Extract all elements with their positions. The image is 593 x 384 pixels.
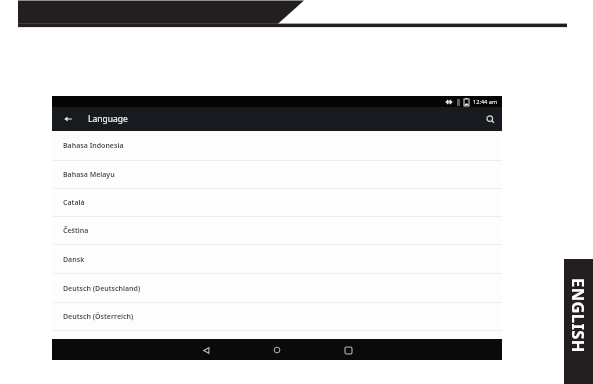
button[interactable]: Deutsch (Österreich)	[52, 303, 502, 331]
button[interactable]: Dansk	[52, 245, 502, 274]
button[interactable]: Čeština	[52, 217, 502, 245]
staticText: Deutsch (Österreich)	[63, 312, 134, 322]
staticText: Bahasa Melayu	[63, 170, 115, 180]
staticText: Català	[63, 198, 85, 208]
staticText: ENGLISH	[568, 278, 590, 353]
staticText: Language	[88, 113, 128, 125]
staticText: Dansk	[63, 255, 85, 265]
button[interactable]: Deutsch (Deutschland)	[52, 274, 502, 303]
button[interactable]: Home	[267, 340, 287, 360]
staticText: Čeština	[63, 226, 89, 236]
button[interactable]: Bahasa Melayu	[52, 161, 502, 189]
button[interactable]: Bahasa Indonesia	[52, 131, 502, 161]
staticText: Deutsch (Deutschland)	[63, 284, 141, 294]
button[interactable]: Back	[196, 340, 216, 360]
button[interactable]: Back	[58, 109, 78, 129]
button[interactable]: Search	[480, 109, 500, 129]
staticText: Bahasa Indonesia	[63, 141, 124, 151]
button[interactable]: Català	[52, 189, 502, 217]
staticText: 12:44 am	[473, 98, 498, 106]
button[interactable]: Recent apps	[338, 340, 358, 360]
